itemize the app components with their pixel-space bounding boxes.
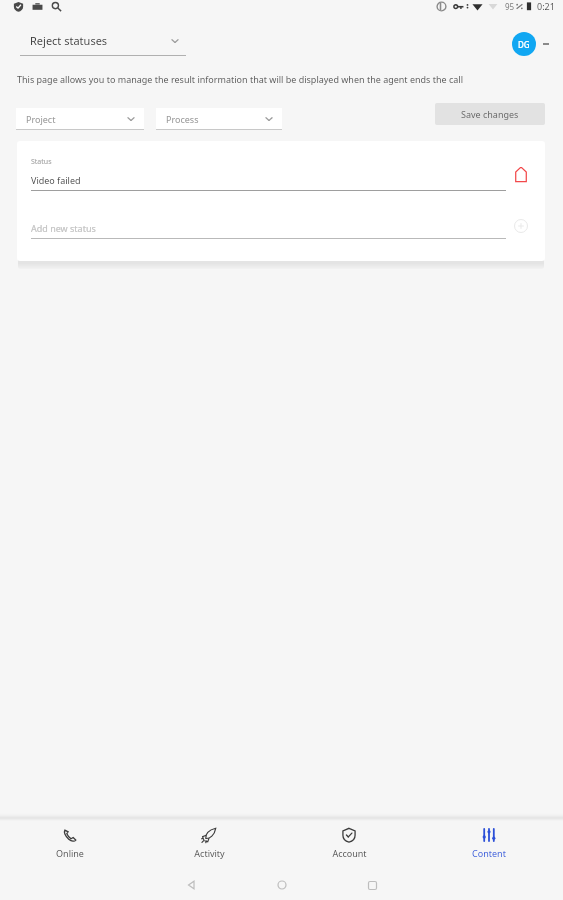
staticText: Project	[26, 113, 56, 125]
staticText: 95	[505, 1, 515, 12]
button[interactable]: Add status	[511, 216, 531, 236]
staticText: Online	[56, 847, 84, 859]
button[interactable]: Back	[179, 873, 203, 897]
button[interactable]: Save changes	[435, 103, 545, 125]
button[interactable]: Reject statuses	[20, 33, 186, 56]
staticText: DG	[518, 39, 530, 50]
staticText: This page allows you to manage the resul…	[17, 73, 464, 85]
button[interactable]: Account	[279, 827, 419, 859]
button[interactable]: Online	[0, 827, 139, 859]
button[interactable]: Project	[16, 108, 144, 130]
button[interactable]: Content	[419, 827, 559, 859]
button[interactable]: Home	[270, 873, 294, 897]
button[interactable]: More	[541, 39, 551, 49]
staticText: Video failed	[31, 174, 81, 186]
button[interactable]: DG	[512, 32, 536, 56]
staticText: 0:21	[537, 0, 555, 12]
staticText: Account	[332, 847, 367, 859]
button[interactable]: Process	[156, 108, 282, 130]
staticText: Status	[31, 157, 52, 167]
staticText: Reject statuses	[30, 33, 108, 48]
button[interactable]: Delete	[511, 164, 531, 184]
staticText: Activity	[194, 847, 225, 859]
staticText: Process	[166, 113, 199, 125]
button[interactable]: Activity	[139, 827, 279, 859]
staticText: Add new status	[31, 222, 96, 234]
staticText: Save changes	[461, 108, 519, 120]
button[interactable]: Recents	[360, 873, 384, 897]
staticText: Content	[472, 847, 506, 859]
